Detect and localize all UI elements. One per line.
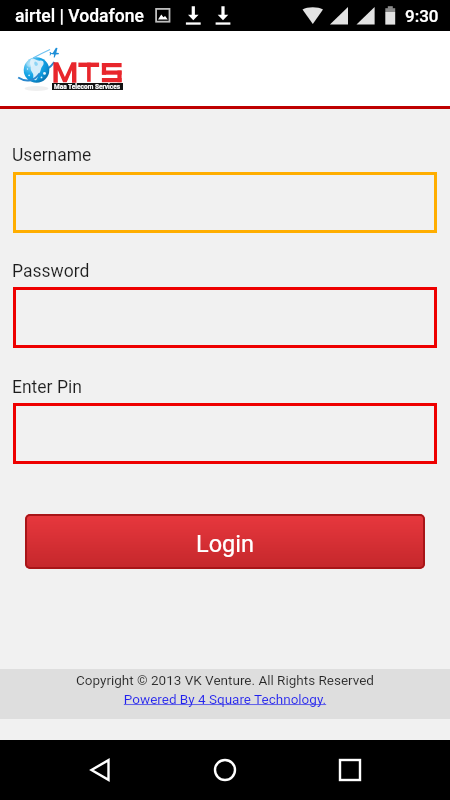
staticText: 9:30 xyxy=(405,6,439,26)
button[interactable] xyxy=(13,287,437,348)
button[interactable]: Home xyxy=(201,746,249,794)
staticText: Password xyxy=(12,261,90,282)
staticText: Username xyxy=(12,145,92,166)
button[interactable] xyxy=(13,172,437,233)
button[interactable] xyxy=(13,403,437,464)
button[interactable]: Recents xyxy=(326,746,374,794)
button[interactable]: Login xyxy=(25,514,425,569)
staticText: Copyright © 2013 VK Venture. All Rights … xyxy=(76,672,374,688)
staticText: Enter Pin xyxy=(12,377,82,398)
button[interactable]: Back xyxy=(76,746,124,794)
staticText: airtel | Vodafone xyxy=(15,6,144,27)
staticText: Login xyxy=(196,530,254,558)
staticText: Maa Telecom Services xyxy=(54,83,121,90)
button[interactable]: Powered By 4 Square Technology. xyxy=(122,691,328,707)
